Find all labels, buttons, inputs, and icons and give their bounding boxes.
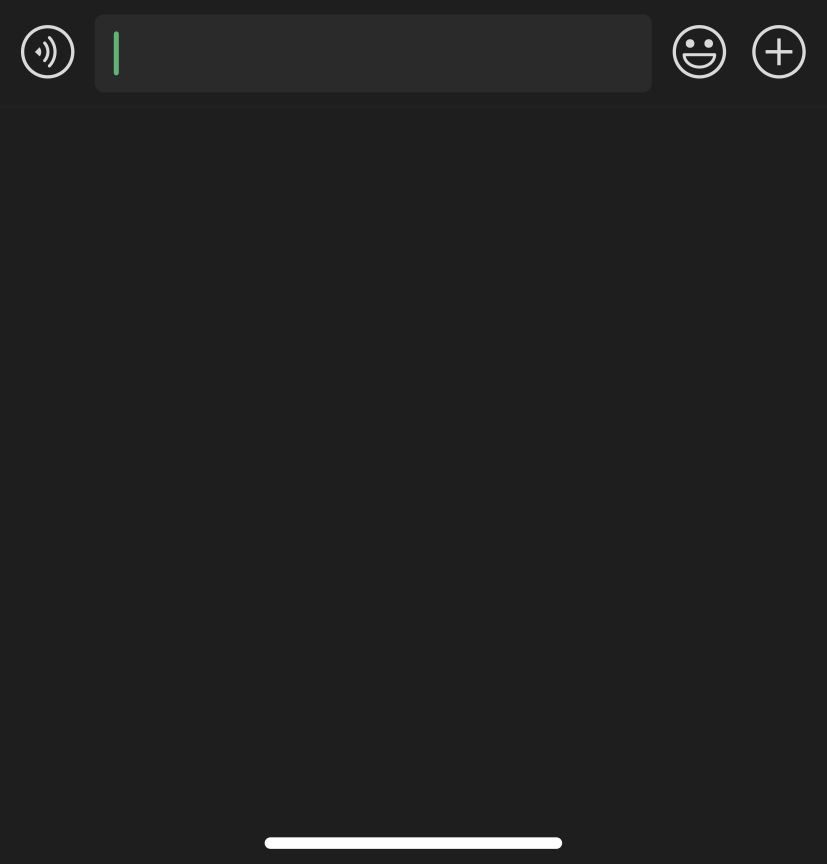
button[interactable]: Add attachment	[750, 23, 808, 81]
button[interactable]: Dictation	[19, 23, 77, 81]
button[interactable]: Emoji	[670, 23, 728, 81]
button[interactable]: Message	[95, 14, 652, 92]
